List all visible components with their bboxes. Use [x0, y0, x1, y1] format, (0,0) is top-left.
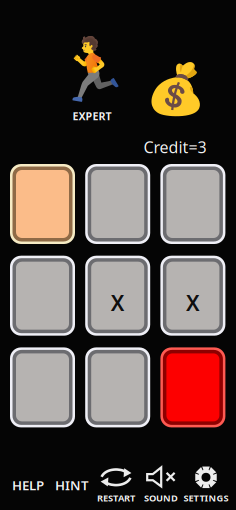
staticText: 🏃 — [54, 35, 130, 105]
button[interactable]: RESTART — [94, 465, 138, 505]
button[interactable]: X — [160, 256, 225, 336]
staticText: 💰 — [144, 61, 205, 117]
staticText: RESTART — [97, 492, 135, 504]
button[interactable]: HELP — [7, 465, 49, 505]
button[interactable]: Expert level — [53, 32, 131, 126]
staticText: SOUND — [144, 492, 178, 504]
button[interactable]: Coins — [144, 61, 205, 117]
staticText: HELP — [12, 476, 44, 494]
button[interactable]: SETTINGS — [183, 465, 229, 505]
button[interactable] — [85, 347, 150, 427]
button[interactable] — [10, 347, 75, 427]
staticText: X — [186, 288, 200, 317]
staticText: Credit=3 — [143, 136, 206, 158]
button[interactable] — [160, 347, 225, 427]
staticText: X — [111, 288, 125, 317]
button[interactable] — [10, 164, 75, 244]
button[interactable]: SOUND — [139, 465, 183, 505]
button[interactable] — [10, 256, 75, 336]
button[interactable] — [85, 164, 150, 244]
staticText: EXPERT — [72, 109, 111, 123]
button[interactable] — [160, 164, 225, 244]
button[interactable]: X — [85, 256, 150, 336]
staticText: SETTINGS — [183, 492, 228, 504]
button[interactable]: HINT — [51, 465, 93, 505]
staticText: HINT — [55, 476, 89, 494]
